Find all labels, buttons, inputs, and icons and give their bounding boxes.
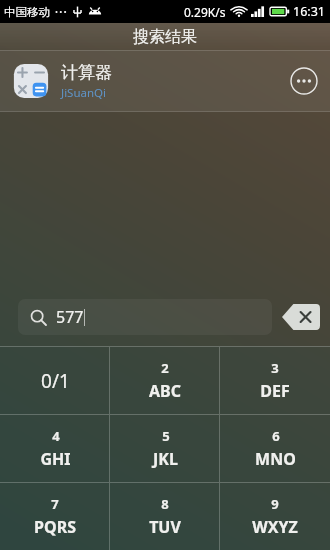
button[interactable]: 2 <box>110 347 220 414</box>
button[interactable]: 577 <box>18 299 272 335</box>
staticText: 搜索结果 <box>133 27 197 47</box>
staticText: 7 <box>51 495 59 513</box>
staticText: JKL <box>153 448 178 470</box>
staticText: 5 <box>162 427 170 445</box>
staticText: 6 <box>272 427 280 445</box>
staticText: 9 <box>271 495 279 513</box>
button[interactable]: 0/1 <box>0 347 110 414</box>
button[interactable]: 5 <box>110 415 220 482</box>
staticText: WXYZ <box>252 516 298 538</box>
staticText: 3 <box>271 359 279 377</box>
staticText: ABC <box>149 380 181 402</box>
button[interactable]: More options <box>290 67 318 95</box>
button[interactable]: 7 <box>0 483 110 550</box>
staticText: TUV <box>149 516 181 538</box>
button[interactable] <box>0 50 330 112</box>
staticText: 中国移动 <box>4 5 50 19</box>
staticText: 0.29K/s <box>184 4 226 20</box>
staticText: 计算器 <box>61 62 112 83</box>
staticText: 4 <box>52 427 60 445</box>
staticText: 16:31 <box>293 3 325 20</box>
staticText: DEF <box>260 380 290 402</box>
button[interactable]: 9 <box>220 483 330 550</box>
staticText: 577 <box>56 306 84 328</box>
button[interactable]: Backspace <box>282 304 320 330</box>
button[interactable]: 3 <box>220 347 330 414</box>
staticText: JiSuanQi <box>61 85 107 101</box>
staticText: GHI <box>40 448 71 470</box>
staticText: 0/1 <box>41 368 70 394</box>
button[interactable]: 8 <box>110 483 220 550</box>
button[interactable]: 4 <box>0 415 110 482</box>
button[interactable]: 6 <box>220 415 330 482</box>
staticText: PQRS <box>34 516 76 538</box>
staticText: 8 <box>161 495 169 513</box>
staticText: 2 <box>161 359 169 377</box>
staticText: MNO <box>255 448 296 470</box>
